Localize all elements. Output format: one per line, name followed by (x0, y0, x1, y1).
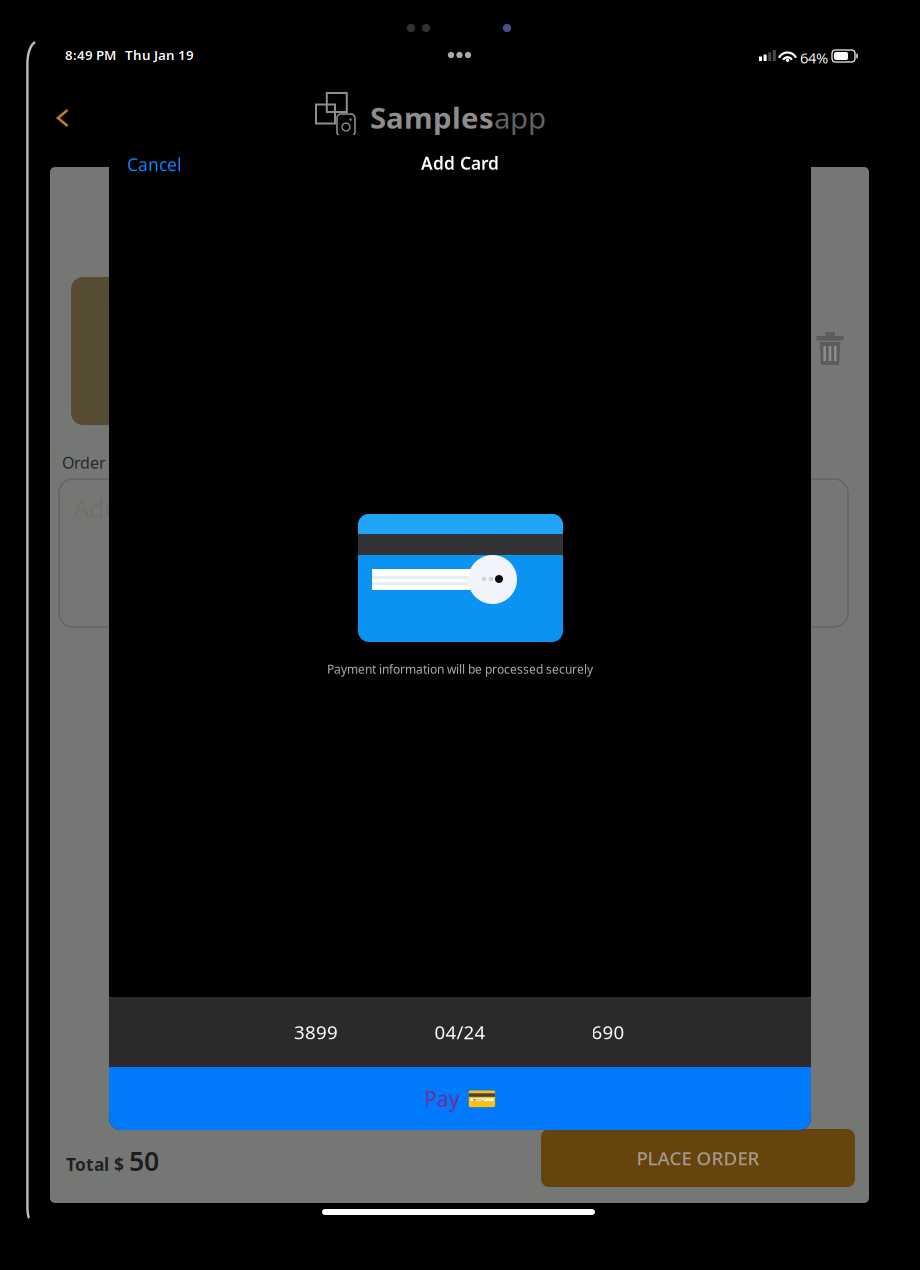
staticText: app (494, 98, 546, 137)
button[interactable]: Cancel (115, 141, 193, 188)
button[interactable]: 3899 (236, 997, 396, 1067)
button[interactable]: Pay (109, 1067, 811, 1130)
button[interactable]: 690 (528, 997, 688, 1067)
staticText: Order Note (62, 452, 147, 473)
button[interactable]: PLACE ORDER (541, 1129, 855, 1187)
staticText: 8:49 PM (65, 46, 116, 64)
button[interactable]: 04/24 (380, 997, 540, 1067)
staticText: 3899 (294, 1020, 338, 1044)
staticText: 690 (591, 1020, 624, 1044)
staticText: Cancel (127, 153, 181, 176)
staticText: Thu Jan 19 (125, 46, 194, 64)
staticText: Pay (423, 1084, 459, 1113)
staticText: Payment information will be processed se… (327, 661, 593, 677)
staticText: PLACE ORDER (636, 1146, 759, 1170)
staticText: Total $ (66, 1153, 124, 1176)
staticText: 💳 (466, 1085, 496, 1112)
staticText: 04/24 (434, 1020, 485, 1044)
staticText: 64% (800, 48, 828, 67)
staticText: 50 (129, 1143, 159, 1178)
staticText: Add Card (421, 151, 499, 174)
staticText: Samples (370, 98, 494, 137)
button[interactable]: Back (42, 94, 85, 142)
staticText: Add note (73, 491, 182, 525)
